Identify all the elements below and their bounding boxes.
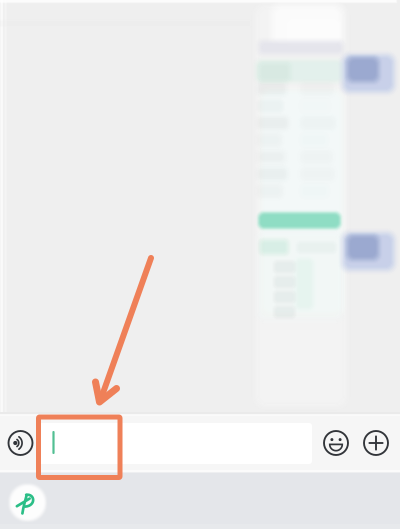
- button[interactable]: Emoji: [319, 426, 353, 460]
- button[interactable]: More options: [359, 426, 393, 460]
- button[interactable]: Voice message: [3, 426, 37, 460]
